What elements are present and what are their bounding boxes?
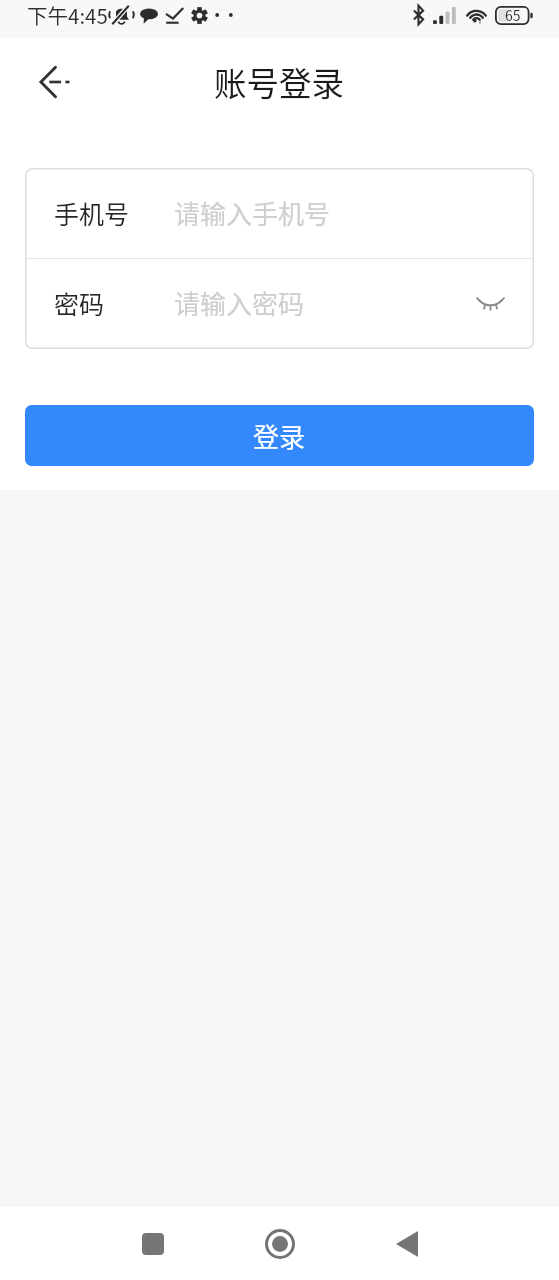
button[interactable]: Show password [472, 285, 508, 321]
staticText: 账号登录 [214, 58, 345, 105]
staticText: 密码 [54, 285, 105, 321]
staticText: 65 [505, 5, 521, 25]
staticText: 请输入手机号 [174, 194, 331, 232]
button[interactable]: Recent apps [115, 1213, 191, 1275]
button[interactable]: Home [242, 1213, 318, 1275]
staticText: 请输入密码 [174, 284, 305, 322]
button[interactable]: 密码 [25, 258, 534, 348]
button[interactable]: Back [31, 58, 79, 106]
button[interactable]: Back [369, 1213, 445, 1275]
button[interactable]: 登录 [25, 405, 534, 466]
button[interactable]: 手机号 [25, 168, 534, 258]
staticText: 登录 [253, 417, 306, 455]
staticText: 手机号 [54, 195, 130, 231]
staticText: 下午4:45 [27, 0, 108, 30]
